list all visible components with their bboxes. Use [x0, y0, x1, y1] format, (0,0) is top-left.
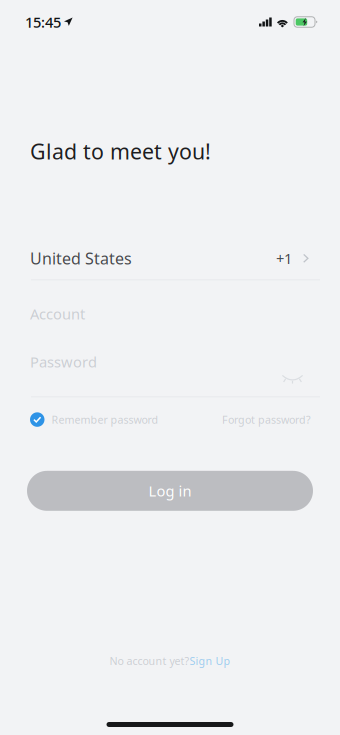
staticText: Glad to meet you! — [30, 137, 211, 165]
button[interactable]: Sign Up — [189, 654, 230, 668]
staticText: No account yet? — [109, 654, 189, 668]
button[interactable]: Forgot password? — [222, 412, 311, 427]
button[interactable]: Show password — [278, 371, 307, 388]
staticText: 15:45 — [25, 12, 61, 32]
button[interactable]: United States — [0, 237, 340, 279]
staticText: Forgot password? — [222, 412, 311, 427]
staticText: Log in — [148, 481, 191, 501]
staticText: Remember password — [51, 412, 158, 427]
staticText: Password — [30, 352, 97, 372]
staticText: +1 — [276, 249, 292, 268]
staticText: Sign Up — [189, 654, 230, 668]
button[interactable]: Log in — [27, 471, 313, 511]
staticText: Account — [30, 304, 85, 324]
button[interactable]: Remember password — [30, 412, 158, 427]
staticText: United States — [30, 248, 132, 269]
